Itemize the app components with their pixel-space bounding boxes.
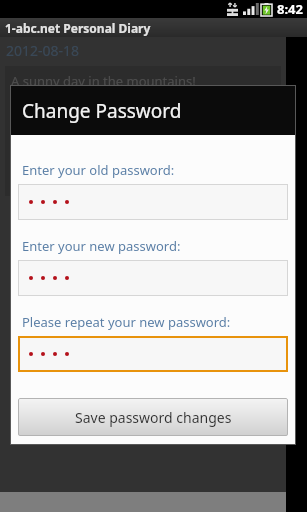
staticText: 2012-08-18 xyxy=(6,41,80,60)
staticText: A sunny day in the mountains! xyxy=(11,72,196,90)
button[interactable]: Password field xyxy=(18,260,288,296)
staticText: Save password changes xyxy=(75,408,232,427)
staticText: 8:42 xyxy=(277,0,303,18)
staticText: Enter your old password: xyxy=(22,161,175,179)
button[interactable]: Password field xyxy=(18,184,288,220)
button[interactable]: Save password changes xyxy=(18,398,288,436)
staticText: Enter your new password: xyxy=(22,237,181,255)
staticText: Please repeat your new password: xyxy=(22,313,231,331)
staticText: Change Password xyxy=(22,98,182,124)
button[interactable]: Password field xyxy=(18,336,288,372)
staticText: It is so nice here. I will never go xyxy=(11,100,203,118)
staticText: 1-abc.net Personal Diary xyxy=(5,20,151,36)
